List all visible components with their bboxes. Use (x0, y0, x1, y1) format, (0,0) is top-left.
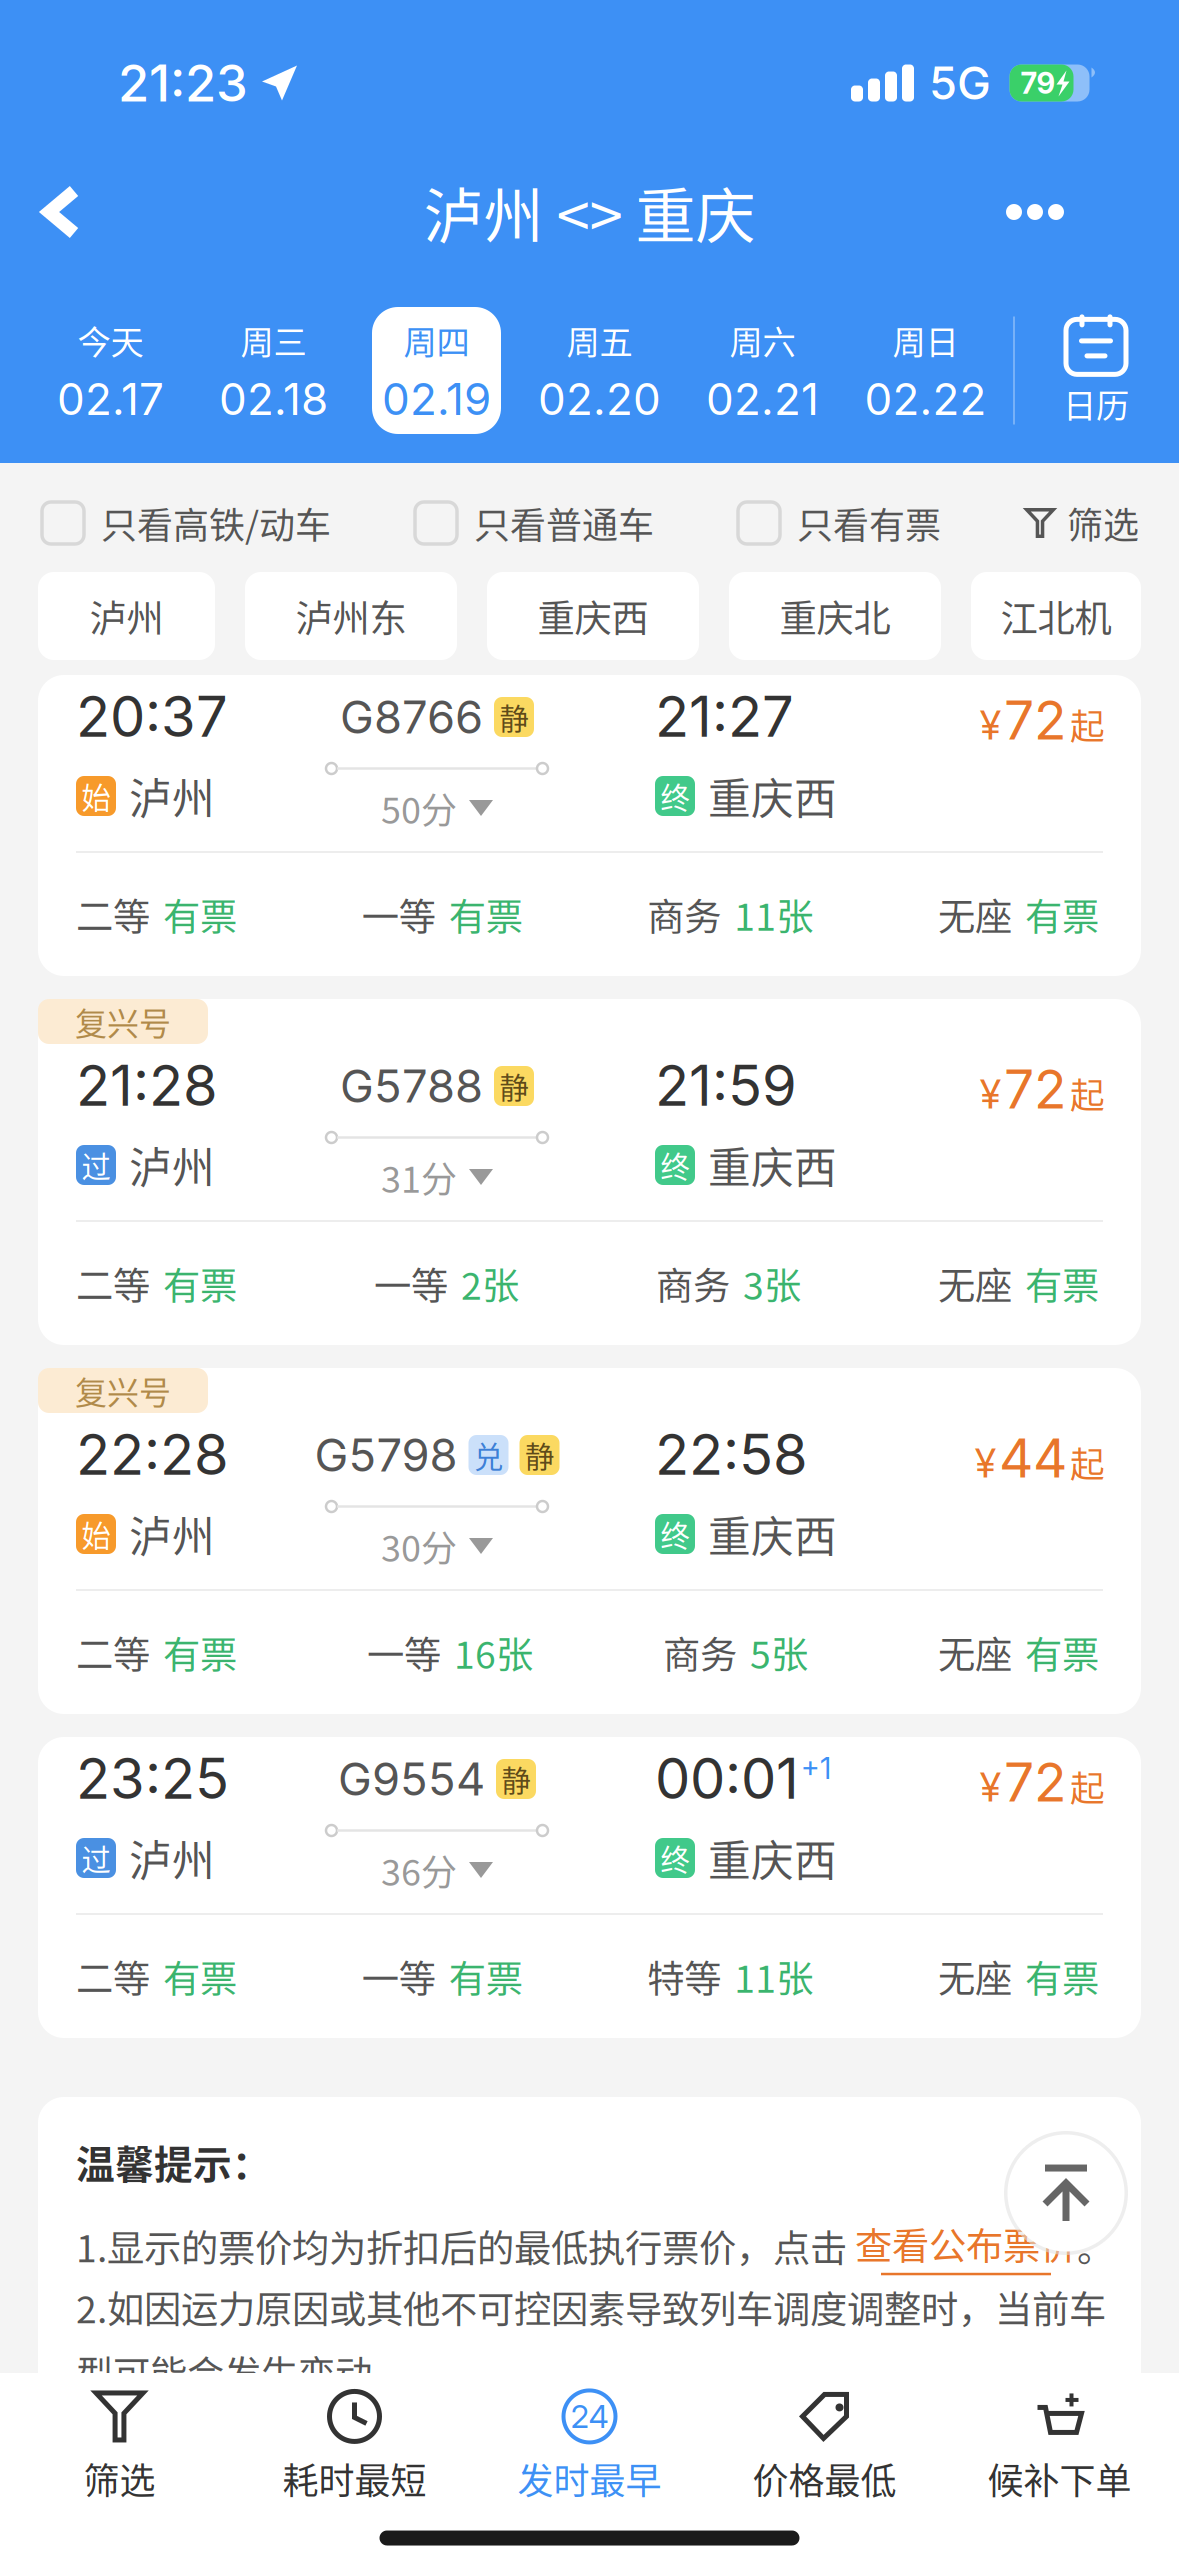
staticText: 有票 (163, 1625, 237, 1680)
staticText: 20:37 (76, 683, 228, 750)
staticText: 起 (1070, 1068, 1105, 1118)
staticText: 2张 (461, 1256, 519, 1311)
button[interactable]: 24 (472, 2372, 707, 2522)
staticText: G5798 (314, 1428, 457, 1482)
staticText: 31分 (381, 1151, 457, 1203)
staticText: 有票 (163, 887, 237, 942)
staticText: 一等 (367, 1625, 441, 1680)
button[interactable]: Back (0, 153, 115, 271)
staticText: 23:25 (76, 1745, 229, 1812)
button[interactable]: 只看高铁/动车 (42, 493, 331, 553)
button[interactable]: Scroll to top (1004, 2131, 1128, 2255)
staticText: 只看有票 (797, 497, 941, 549)
button[interactable]: 周六 (681, 307, 844, 434)
staticText: ¥ (980, 1070, 1001, 1118)
staticText: 1.显示的票价均为折扣后的最低执行票价，点击 (76, 2219, 855, 2273)
button[interactable]: 复兴号 (38, 999, 1141, 1345)
staticText: 一等 (362, 887, 436, 942)
staticText: 5张 (750, 1625, 808, 1680)
staticText: 温馨提示： (76, 2134, 271, 2190)
staticText: G9554 (338, 1752, 485, 1806)
staticText: 复兴号 (75, 1367, 171, 1414)
button[interactable]: 今天 (29, 307, 192, 434)
staticText: 。 (1077, 2219, 1114, 2273)
button[interactable]: 候补下单 (942, 2372, 1177, 2522)
button[interactable]: 复兴号 (38, 1368, 1141, 1714)
staticText: 30分 (381, 1520, 457, 1572)
staticText: 有票 (449, 887, 523, 942)
staticText: 11张 (734, 887, 813, 942)
staticText: 11张 (734, 1949, 813, 2004)
staticText: 二等 (76, 1625, 150, 1680)
staticText: 16张 (454, 1625, 533, 1680)
staticText: 商务 (647, 887, 721, 942)
button[interactable]: 泸州 (38, 572, 215, 660)
button[interactable]: 筛选 (2, 2372, 237, 2522)
staticText: 耗时最短 (282, 2452, 426, 2504)
staticText: 00:01 (655, 1745, 799, 1812)
staticText: 21:23 (118, 52, 248, 114)
staticText: 44 (999, 1426, 1067, 1490)
staticText: 终 (660, 775, 689, 817)
staticText: 特等 (647, 1949, 721, 2004)
staticText: 静 (525, 1434, 554, 1476)
button[interactable]: 周四 (355, 307, 518, 434)
button[interactable]: 只看普通车 (415, 493, 654, 553)
staticText: 79 (1020, 65, 1055, 101)
staticText: 商务 (663, 1625, 737, 1680)
staticText: 周四 (403, 316, 469, 364)
button[interactable]: 查看公布票价 (855, 2217, 1077, 2275)
button[interactable]: 周三 (192, 307, 355, 434)
button[interactable]: More (964, 153, 1179, 271)
button[interactable]: 23:25 (38, 1737, 1141, 2038)
staticText: 二等 (76, 1949, 150, 2004)
button[interactable]: 20:37 (38, 675, 1141, 976)
staticText: 02.21 (706, 372, 819, 426)
staticText: 无座 (938, 1625, 1012, 1680)
staticText: 兑 (474, 1434, 503, 1476)
button[interactable]: 周五 (518, 307, 681, 434)
staticText: 终 (660, 1513, 689, 1555)
button[interactable]: 耗时最短 (237, 2372, 472, 2522)
staticText: 周六 (729, 316, 795, 364)
staticText: 重庆西 (537, 589, 648, 643)
button[interactable]: 价格最低 (707, 2372, 942, 2522)
staticText: +1 (801, 1751, 831, 1786)
staticText: G8766 (340, 690, 483, 744)
staticText: 36分 (381, 1844, 457, 1896)
staticText: 重庆西 (708, 1827, 837, 1889)
button[interactable]: 重庆西 (487, 572, 699, 660)
staticText: 02.20 (538, 372, 661, 426)
staticText: 无座 (938, 1256, 1012, 1311)
button[interactable]: 周日 (844, 307, 1007, 434)
staticText: 只看普通车 (474, 497, 654, 549)
staticText: 今天 (77, 316, 143, 364)
staticText: 始 (81, 775, 110, 817)
staticText: 复兴号 (75, 998, 171, 1045)
staticText: 有票 (1025, 1256, 1099, 1311)
staticText: 21:59 (655, 1052, 797, 1119)
staticText: 02.19 (382, 372, 491, 426)
staticText: 重庆西 (708, 765, 837, 827)
staticText: 02.17 (57, 372, 164, 426)
staticText: 3张 (743, 1256, 801, 1311)
staticText: 型可能会发生变动 (76, 2345, 372, 2399)
button[interactable]: 只看有票 (738, 493, 941, 553)
button[interactable]: 筛选 (1025, 493, 1139, 553)
button[interactable]: 江北机 (971, 572, 1141, 660)
staticText: 22:28 (76, 1421, 229, 1488)
button[interactable]: 重庆北 (729, 572, 941, 660)
staticText: 一等 (362, 1949, 436, 2004)
button[interactable]: 泸州东 (245, 572, 457, 660)
staticText: 21:27 (655, 683, 794, 750)
staticText: 只看高铁/动车 (101, 497, 331, 549)
staticText: 一等 (374, 1256, 448, 1311)
staticText: 2.如因运力原因或其他不可控因素导致列车调度调整时，当前车 (76, 2280, 1106, 2334)
staticText: 重庆北 (779, 589, 890, 643)
staticText: 起 (1070, 699, 1105, 749)
staticText: 终 (660, 1837, 689, 1879)
staticText: 周五 (566, 316, 632, 364)
staticText: 静 (499, 1065, 528, 1107)
staticText: 周三 (240, 316, 306, 364)
button[interactable]: 日历 (1031, 307, 1161, 434)
